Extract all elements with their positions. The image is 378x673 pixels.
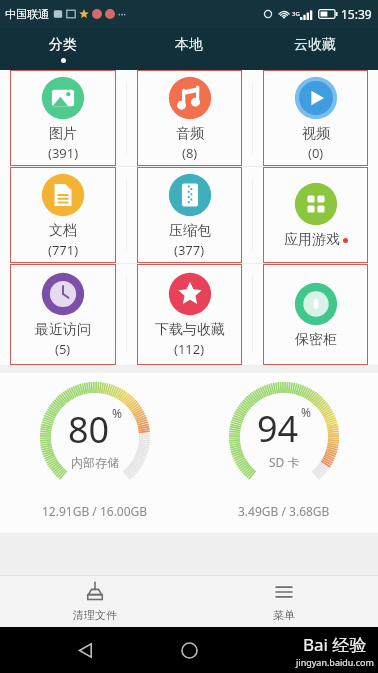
staticText: 保密柜 (295, 331, 337, 349)
button[interactable]: 压缩包 (137, 171, 242, 259)
staticText: 本地 (175, 36, 203, 54)
staticText: 内部存储 (71, 455, 119, 470)
staticText: (8) (182, 144, 198, 162)
staticText: ··· (118, 7, 127, 21)
staticText: 3G (292, 10, 300, 18)
button[interactable]: 下载与收藏 (137, 268, 242, 361)
staticText: 云收藏 (294, 36, 336, 54)
button[interactable]: Home (174, 635, 204, 665)
staticText: % (301, 404, 311, 420)
button[interactable]: 音频 (137, 74, 242, 162)
staticText: 中国联通 (5, 7, 49, 21)
button[interactable]: 本地 (126, 28, 252, 70)
button[interactable]: 视频 (263, 74, 368, 162)
staticText: 3.49GB / 3.68GB (238, 503, 330, 519)
staticText: % (112, 405, 122, 421)
staticText: 80 (68, 405, 110, 454)
staticText: 清理文件 (73, 608, 117, 622)
staticText: (112) (174, 340, 205, 358)
button[interactable]: 应用游戏 (263, 171, 368, 259)
staticText: SD 卡 (269, 454, 300, 470)
staticText: (771) (48, 241, 79, 259)
staticText: 12.91GB / 16.00GB (42, 503, 148, 519)
staticText: 分类 (49, 36, 77, 54)
button[interactable]: 菜单 (189, 575, 378, 627)
staticText: 菜单 (273, 608, 295, 622)
button[interactable]: 文档 (10, 171, 116, 259)
button[interactable]: 云收藏 (252, 28, 378, 70)
staticText: (391) (48, 144, 79, 162)
staticText: 文档 (49, 222, 77, 240)
staticText: 音频 (176, 125, 204, 143)
button[interactable]: 清理文件 (0, 575, 189, 627)
staticText: (5) (55, 340, 71, 358)
button[interactable]: 图片 (10, 74, 116, 162)
staticText: 下载与收藏 (155, 321, 225, 339)
staticText: 压缩包 (169, 222, 211, 240)
button[interactable]: 保密柜 (263, 268, 368, 361)
staticText: (377) (174, 241, 205, 259)
staticText: 15:39 (341, 6, 372, 22)
staticText: Bai 经验 (303, 633, 367, 656)
button[interactable]: 分类 (0, 28, 126, 70)
staticText: jingyan.baidu.com (296, 656, 374, 668)
staticText: 94 (257, 404, 299, 453)
button[interactable]: 最近访问 (10, 268, 116, 361)
staticText: 图片 (49, 125, 77, 143)
staticText: 视频 (302, 125, 330, 143)
staticText: 最近访问 (35, 321, 91, 339)
staticText: 应用游戏 (284, 231, 340, 249)
button[interactable]: Back (70, 635, 100, 665)
staticText: (0) (308, 144, 324, 162)
